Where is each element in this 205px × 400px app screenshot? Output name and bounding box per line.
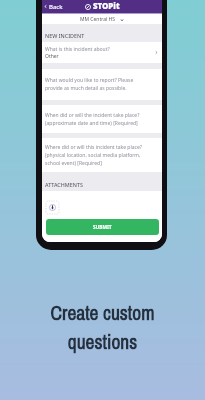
button[interactable]: What would you like to report? Please pr… [42, 69, 162, 100]
button[interactable]: MM Central HS [42, 14, 162, 24]
staticText: ATTACHMENTS [45, 181, 83, 188]
staticText: Other [45, 53, 59, 60]
button[interactable]: Add attachment [46, 201, 59, 214]
button[interactable]: When did or will the incident take place… [42, 105, 162, 133]
other: Back [43, 4, 48, 9]
staticText: MM Central HS [80, 16, 116, 23]
button[interactable]: Where did or will this incident take pla… [42, 138, 162, 172]
button[interactable]: SUBMIT [46, 219, 159, 235]
staticText: Back [49, 3, 63, 10]
staticText: Create custom questions [0, 300, 205, 355]
staticText: STOPit [93, 1, 120, 12]
button[interactable]: Back [42, 0, 66, 13]
staticText: Where did or will this incident take pla… [45, 144, 142, 167]
staticText: NEW INCIDENT [45, 32, 85, 39]
button[interactable]: What is this incident about? [42, 42, 162, 63]
staticText: What would you like to report? Please pr… [45, 77, 134, 92]
staticText: SUBMIT [93, 224, 112, 231]
staticText: What is this incident about? [45, 46, 110, 53]
staticText: When did or will the incident take place… [45, 112, 140, 127]
